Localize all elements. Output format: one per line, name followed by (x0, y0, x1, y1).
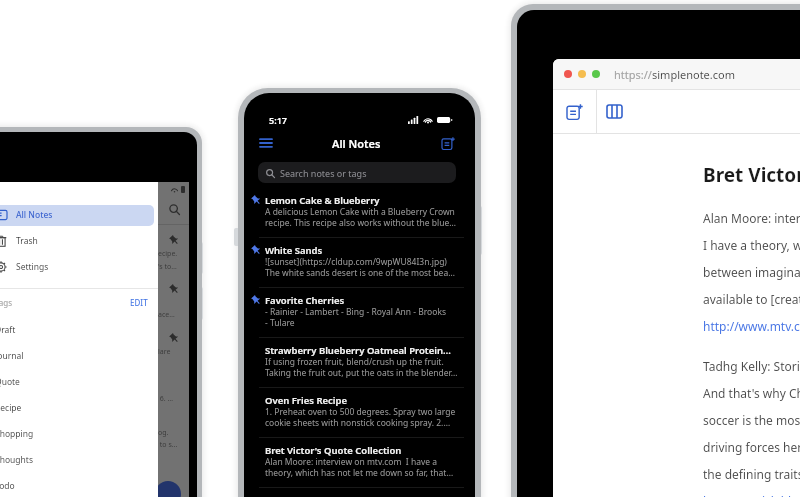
button[interactable]: Favorite Cherries (244, 291, 475, 341)
button[interactable]: Quote (0, 369, 158, 395)
staticText: EDIT (130, 297, 148, 308)
staticText: A delicious Lemon Cake with a Blueberry … (265, 206, 455, 217)
staticText: Draft (0, 324, 16, 336)
staticText: The white sands desert is one of the mos… (265, 267, 455, 278)
staticText: Alan Moore: interview on mtv.com (703, 210, 800, 226)
button[interactable]: Bret Victor's Quote Collection (244, 441, 475, 491)
button[interactable]: White Sands (244, 241, 475, 291)
staticText: available to [create] something that is (703, 291, 800, 307)
button[interactable]: New note (553, 90, 596, 133)
button[interactable]: Journal (0, 343, 158, 369)
button[interactable]: Shopping (0, 421, 158, 447)
staticText: the defining traits of games and play (703, 466, 800, 482)
staticText: lare (158, 347, 171, 357)
staticText: If using frozen fruit, blend/crush up th… (265, 356, 444, 367)
staticText: All Notes (332, 136, 381, 151)
staticText: 's to… (158, 262, 177, 272)
staticText: http://particleblog.com/2011/06/19 (703, 493, 800, 497)
staticText: to s… (158, 440, 178, 450)
staticText: Settings (16, 261, 49, 273)
button[interactable]: Strawberry Blueberry Oatmeal Protein… (244, 341, 475, 391)
staticText: Todo (0, 480, 15, 492)
staticText: - Rainier - Lambert - Bing - Royal Ann -… (265, 306, 447, 317)
button[interactable]: Thoughts (0, 447, 158, 473)
staticText: og. (158, 428, 169, 438)
staticText: soccer is the most popular sport. They a… (703, 412, 800, 428)
staticText: Quote (0, 376, 20, 388)
staticText: And that's why Chess is the game of king… (703, 385, 800, 401)
button[interactable]: Trash (0, 228, 158, 254)
staticText: Bret Victor's Quote Collection (265, 444, 402, 456)
button[interactable]: Search notes or tags (258, 162, 456, 183)
button[interactable]: Settings (0, 254, 158, 280)
button[interactable]: New note (155, 481, 181, 497)
staticText: Lemon Cake & Blueberry (265, 194, 380, 206)
button[interactable]: Oven Fries Recipe (244, 391, 475, 441)
staticText: Bret Victor's Quote Collection (703, 162, 800, 188)
staticText: Alan Moore: interview on mtv.com I have … (265, 456, 437, 467)
button[interactable]: Draft (0, 317, 158, 343)
staticText: https:// (614, 67, 652, 82)
staticText: All Notes (16, 209, 53, 221)
button[interactable]: Todo (0, 473, 158, 497)
button[interactable]: All Notes (0, 202, 158, 228)
staticText: Thoughts (0, 454, 33, 466)
staticText: driving forces here and that is one of (703, 439, 800, 455)
staticText: I have a theory, which has not let me do… (703, 237, 800, 253)
staticText: Favorite Cherries (265, 294, 345, 306)
staticText: Recipe (0, 402, 22, 414)
button[interactable]: EDIT (126, 295, 152, 310)
button[interactable]: Lemon Cake & Blueberry (244, 191, 475, 241)
staticText: cookie sheets with nonstick cooking spra… (265, 417, 451, 428)
button[interactable]: New note (437, 132, 459, 154)
button[interactable]: Menu (255, 132, 277, 154)
staticText: ecipe. (158, 249, 178, 259)
staticText: 1. Preheat oven to 500 degrees. Spray tw… (265, 406, 456, 417)
staticText: ace… (158, 310, 175, 320)
button[interactable]: Columns (597, 90, 631, 133)
staticText: Taking the fruit out, put the oats in th… (265, 367, 458, 378)
staticText: Tadhg Kelly: Stories and Games (703, 358, 800, 374)
staticText: 6. … (158, 394, 174, 404)
staticText: - Tulare (265, 317, 295, 328)
staticText: ![sunset](https://cldup.com/9wpWU84I3n.j… (265, 256, 447, 267)
staticText: theory, which has not let me down so far… (265, 467, 454, 478)
button[interactable]: Search (169, 204, 180, 215)
staticText: Journal (0, 350, 24, 362)
staticText: recipe. This recipe also works without t… (265, 217, 456, 228)
staticText: Shopping (0, 428, 34, 440)
staticText: between imagination and reality is the o… (703, 264, 800, 280)
button[interactable]: Recipe (0, 395, 158, 421)
staticText: Strawberry Blueberry Oatmeal Protein… (265, 344, 451, 356)
staticText: Oven Fries Recipe (265, 394, 348, 406)
staticText: http://www.mtv.com/bands/m/moore (703, 318, 800, 334)
staticText: Tags (0, 297, 13, 308)
staticText: simplenote.com (652, 67, 735, 82)
staticText: White Sands (265, 244, 323, 256)
staticText: Search notes or tags (280, 167, 367, 179)
staticText: 5:17 (269, 114, 287, 126)
staticText: Trash (16, 235, 38, 247)
